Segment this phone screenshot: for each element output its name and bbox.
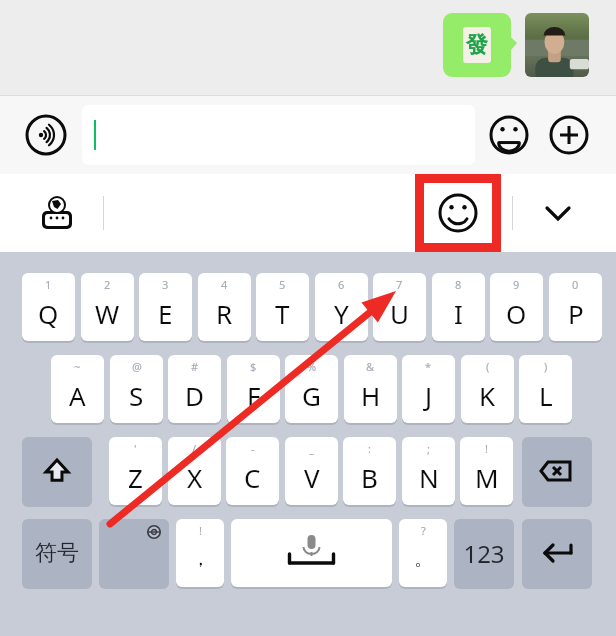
button[interactable]: ) [519,355,572,423]
staticText: & [366,359,375,374]
staticText: 發 [466,31,488,59]
button[interactable]: 0 [549,273,602,341]
staticText: Y [334,296,349,331]
staticText: L [539,378,553,413]
button[interactable]: Enter [522,519,592,587]
button[interactable]: Shift [22,437,92,505]
staticText: ! [485,441,488,456]
button[interactable]: 1 [22,273,75,341]
staticText: O [506,296,527,331]
staticText: P [568,296,584,331]
staticText: 5 [279,277,286,292]
staticText: Z [128,460,143,495]
staticText: R [216,296,233,331]
button[interactable]: 符号 [22,519,92,587]
button[interactable]: / [168,437,221,505]
button[interactable]: More [548,114,590,156]
button[interactable]: 9 [490,273,543,341]
staticText: 9 [513,277,520,292]
staticText: N [419,460,439,495]
staticText: ; [427,441,430,456]
button[interactable]: Avatar [525,13,589,77]
staticText: H [361,378,381,413]
staticText: / [192,441,197,456]
button[interactable]: ! [176,519,224,587]
button[interactable]: 8 [432,273,485,341]
staticText: ( [486,359,490,374]
staticText: 3 [162,277,169,292]
button[interactable]: $ [227,355,280,423]
staticText: 8 [455,277,462,292]
staticText: U [390,296,410,331]
staticText: M [475,460,499,495]
button[interactable] [82,105,475,165]
staticText: A [69,378,86,413]
staticText: ! [199,523,202,538]
button[interactable]: Backspace [522,437,592,505]
button[interactable]: Voice input [25,114,67,156]
staticText: X [187,460,203,495]
button[interactable]: Hide keyboard [538,193,578,233]
staticText: 6 [338,277,345,292]
button[interactable]: - [226,437,279,505]
staticText: B [361,460,378,495]
staticText: # [191,359,199,374]
staticText: I [454,296,463,331]
button[interactable]: 3 [139,273,192,341]
staticText: _ [309,441,314,456]
staticText: T [275,296,290,331]
button[interactable]: Emoji panel [415,174,501,252]
staticText: : [368,441,371,456]
staticText: G [302,378,321,413]
button[interactable]: & [344,355,397,423]
button[interactable]: Space [231,519,392,587]
staticText: 符号 [35,539,79,567]
staticText: ) [544,359,548,374]
button[interactable]: ( [461,355,514,423]
staticText: 0 [572,277,579,292]
staticText: F [247,378,261,413]
staticText: 4 [221,277,228,292]
button[interactable]: % [285,355,338,423]
staticText: ~ [74,359,81,374]
button[interactable]: ~ [51,355,104,423]
button[interactable]: ! [460,437,513,505]
staticText: S [129,378,144,413]
staticText: @ [132,359,142,374]
button[interactable]: 2 [81,273,134,341]
button[interactable]: 5 [256,273,309,341]
button[interactable]: ? [399,519,447,587]
staticText: 123 [463,537,505,570]
staticText: Q [38,296,59,331]
staticText: K [479,378,496,413]
staticText: - [251,441,255,456]
staticText: ， [191,547,210,571]
staticText: 。 [414,547,433,571]
staticText: $ [250,359,257,374]
staticText: J [425,378,433,413]
button[interactable]: 6 [315,273,368,341]
button[interactable]: Emoji [488,114,530,156]
button[interactable]: * [402,355,455,423]
button[interactable]: : [343,437,396,505]
staticText: ? [421,523,426,538]
staticText: 2 [104,277,111,292]
button[interactable]: 7 [373,273,426,341]
staticText: * [425,359,432,374]
staticText: W [95,296,120,331]
staticText: C [244,460,261,495]
button[interactable]: 4 [198,273,251,341]
button[interactable]: 123 [454,519,514,587]
button[interactable]: Chinese English toggle [99,519,169,587]
staticText: % [307,359,317,374]
staticText: V [304,460,320,495]
staticText: 1 [45,277,52,292]
button[interactable]: # [168,355,221,423]
staticText: ' [134,441,137,456]
button[interactable]: ' [109,437,162,505]
button[interactable]: _ [285,437,338,505]
button[interactable]: ; [402,437,455,505]
button[interactable]: Switch keyboard language [35,191,79,235]
button[interactable]: @ [110,355,163,423]
staticText: D [185,378,204,413]
